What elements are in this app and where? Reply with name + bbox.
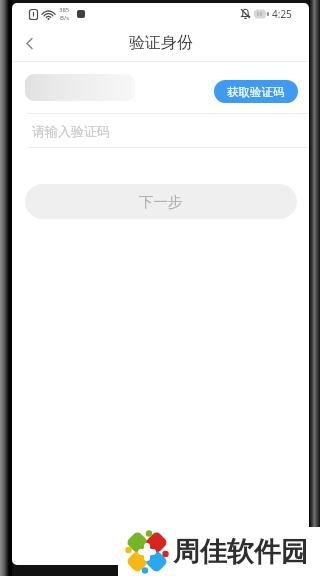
staticText: B/s — [60, 14, 70, 22]
staticText: 验证身份 — [129, 33, 193, 53]
staticText: 周佳软件园 — [173, 535, 308, 569]
button[interactable]: 获取验证码 — [214, 80, 298, 103]
button[interactable]: 下一步 — [25, 184, 297, 219]
button[interactable] — [17, 31, 41, 55]
staticText: 请输入验证码 — [32, 123, 110, 139]
staticText: 4:25 — [272, 7, 292, 21]
button[interactable]: 请输入验证码 — [12, 114, 309, 147]
button[interactable]: 周佳软件园 — [118, 527, 320, 576]
staticText: 385 — [59, 6, 70, 14]
staticText: 获取验证码 — [227, 85, 285, 99]
staticText: 下一步 — [139, 193, 183, 211]
